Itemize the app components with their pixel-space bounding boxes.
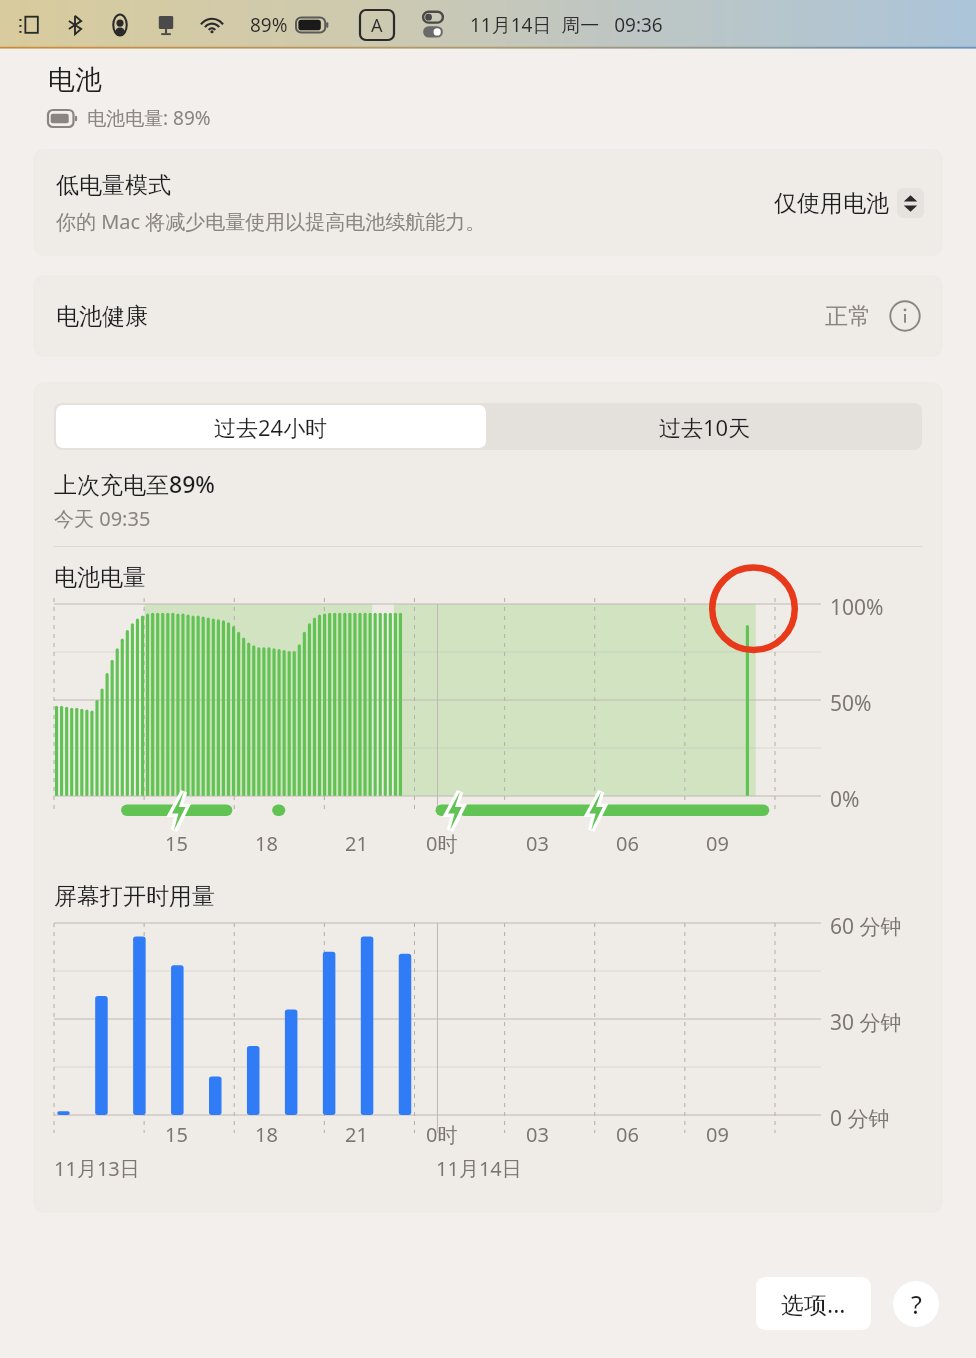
- staticText: A: [371, 13, 383, 38]
- staticText: 0 分钟: [830, 1104, 890, 1133]
- staticText: 仅使用电池: [774, 189, 889, 218]
- staticText: 过去10天: [659, 412, 751, 442]
- other: User: [108, 13, 132, 37]
- button[interactable]: 过去10天: [488, 403, 922, 450]
- staticText: 过去24小时: [214, 412, 328, 442]
- other: Stage Manager: [16, 12, 42, 38]
- staticText: 你的 Mac 将减少电量使用以提高电池续航能力。: [56, 208, 486, 235]
- staticText: 15: [165, 1121, 188, 1148]
- staticText: 电池: [48, 63, 102, 97]
- staticText: 09: [706, 1121, 729, 1148]
- staticText: 18: [255, 830, 278, 857]
- staticText: 上次充电至89%: [54, 468, 215, 499]
- staticText: 21: [345, 1121, 368, 1148]
- other: Control Center: [420, 10, 446, 40]
- staticText: 18: [255, 1121, 278, 1148]
- staticText: 正常: [825, 302, 871, 331]
- staticText: 11月14日 周一 09:36: [470, 12, 663, 38]
- staticText: 选项...: [781, 1288, 846, 1319]
- other: Bluetooth: [64, 14, 86, 36]
- other: Wi-Fi: [200, 13, 224, 37]
- staticText: 0时: [426, 1121, 458, 1148]
- staticText: 06: [616, 1121, 639, 1148]
- other: Display: [154, 13, 178, 37]
- staticText: 低电量模式: [56, 171, 171, 200]
- staticText: 09: [706, 830, 729, 857]
- staticText: 电池电量: [54, 563, 146, 592]
- staticText: 30 分钟: [830, 1008, 902, 1037]
- button[interactable]: 过去24小时: [56, 405, 486, 448]
- button[interactable]: 选项...: [756, 1277, 871, 1330]
- staticText: 电池健康: [56, 302, 825, 331]
- staticText: 11月13日: [54, 1155, 140, 1182]
- staticText: 60 分钟: [830, 912, 902, 941]
- staticText: 89%: [250, 12, 288, 38]
- button[interactable]: 电池健康: [33, 275, 943, 357]
- staticText: 03: [526, 830, 549, 857]
- button[interactable]: 仅使用电池: [774, 188, 924, 218]
- staticText: 0时: [426, 830, 458, 857]
- staticText: 0%: [830, 785, 860, 814]
- staticText: 15: [165, 830, 188, 857]
- staticText: 今天 09:35: [54, 505, 151, 532]
- button[interactable]: 帮助: [893, 1281, 939, 1327]
- staticText: 21: [345, 830, 368, 857]
- staticText: ?: [911, 1287, 922, 1321]
- staticText: 50%: [830, 689, 872, 718]
- staticText: 电池电量: 89%: [87, 105, 211, 131]
- staticText: 03: [526, 1121, 549, 1148]
- staticText: 屏幕打开时用量: [54, 882, 215, 911]
- staticText: 11月14日: [436, 1155, 522, 1182]
- staticText: 06: [616, 830, 639, 857]
- staticText: 100%: [830, 593, 884, 622]
- button[interactable]: 电池健康信息: [889, 300, 921, 332]
